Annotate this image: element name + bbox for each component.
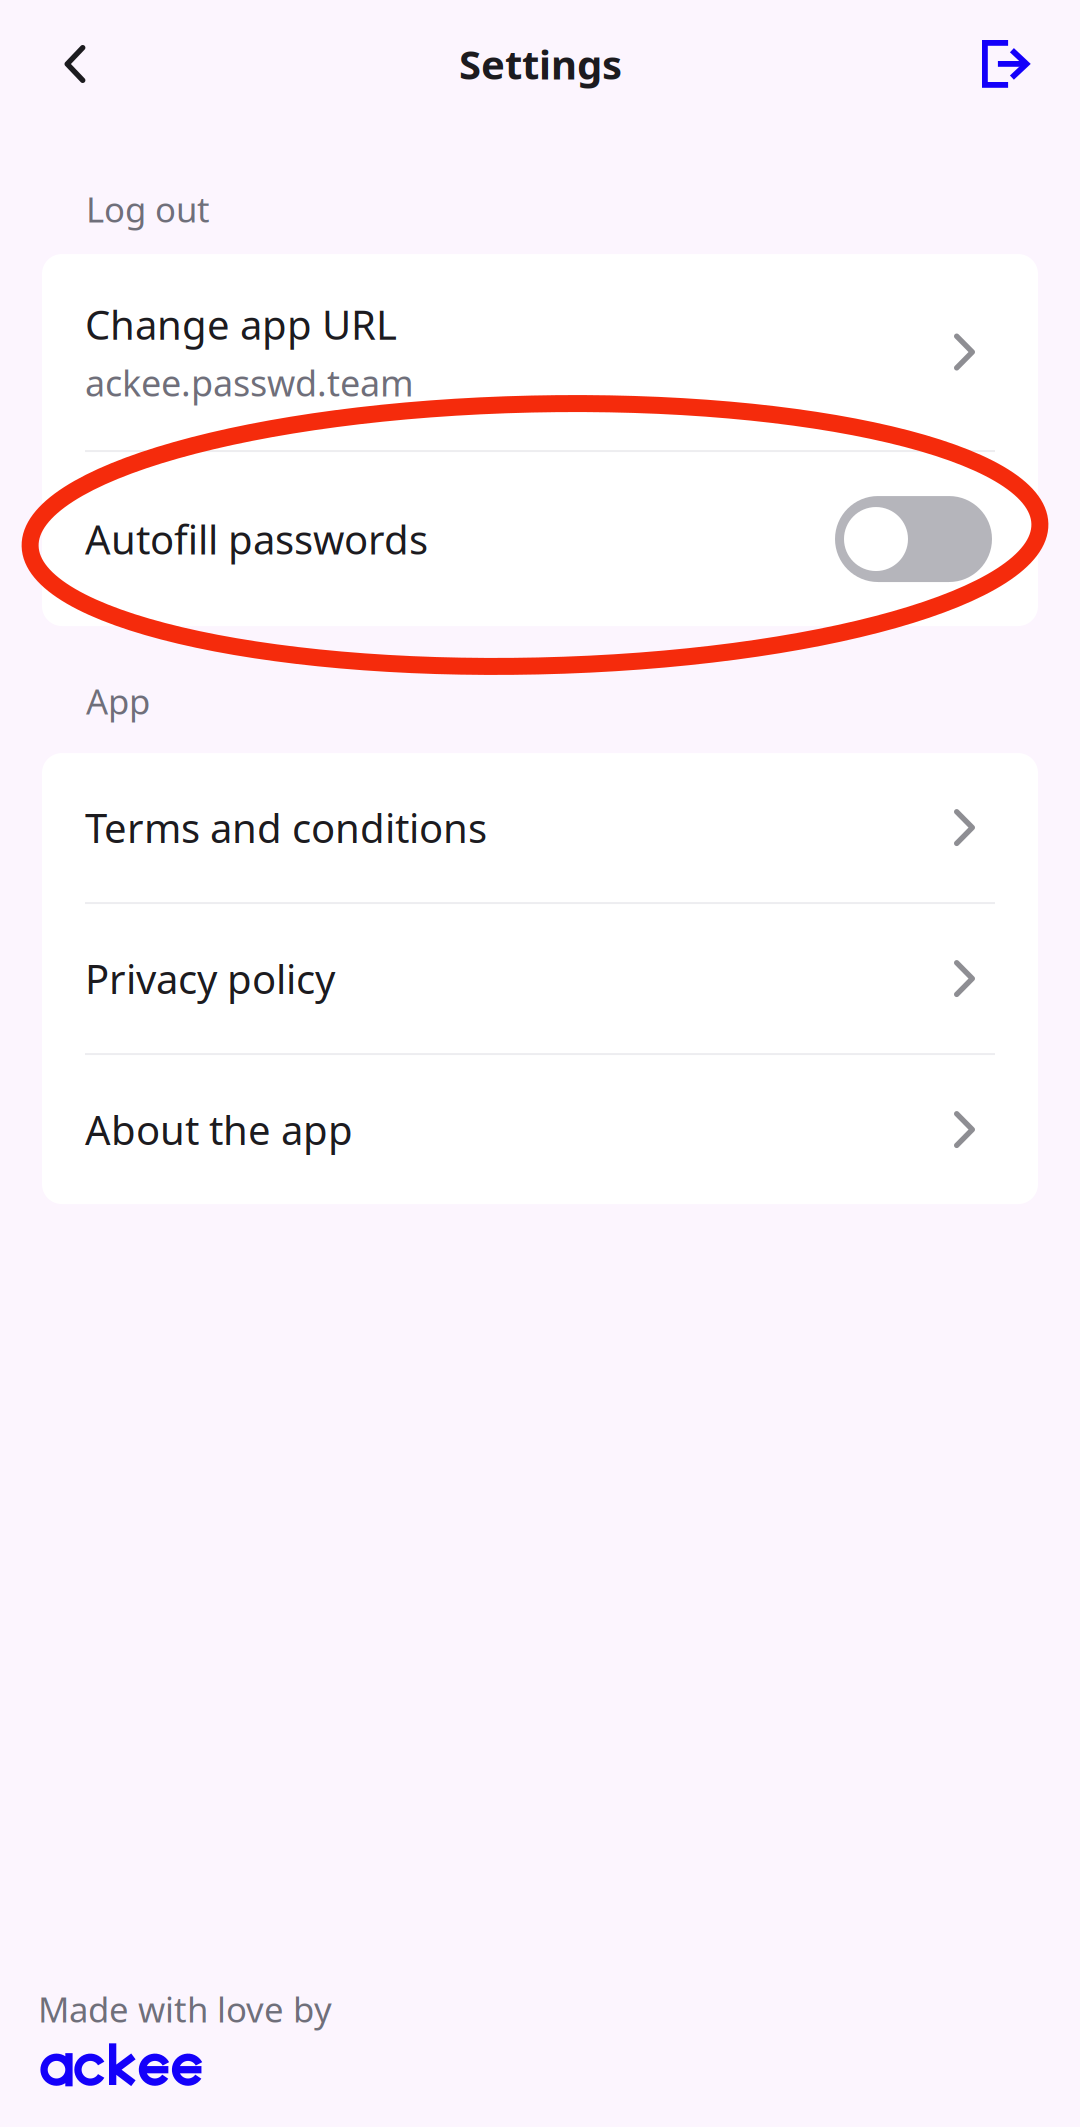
button[interactable]: Change app URL xyxy=(42,254,1038,450)
staticText: Made with love by xyxy=(38,1986,332,2032)
button[interactable]: Back xyxy=(32,0,118,128)
staticText: ackee.passwd.team xyxy=(85,359,414,406)
staticText: Log out xyxy=(86,186,210,232)
button[interactable]: About the app xyxy=(42,1055,1038,1204)
staticText: App xyxy=(86,678,150,724)
button[interactable]: Privacy policy xyxy=(42,904,1038,1053)
staticText: Autofill passwords xyxy=(85,512,428,566)
button[interactable]: Log out xyxy=(963,0,1049,128)
staticText: Settings xyxy=(459,37,622,90)
button[interactable]: Autofill passwords xyxy=(42,452,1038,626)
staticText: About the app xyxy=(85,1103,353,1156)
staticText: Change app URL xyxy=(85,298,397,351)
staticText: Privacy policy xyxy=(85,952,335,1005)
button[interactable]: Terms and conditions xyxy=(42,753,1038,902)
staticText: Terms and conditions xyxy=(85,801,487,854)
